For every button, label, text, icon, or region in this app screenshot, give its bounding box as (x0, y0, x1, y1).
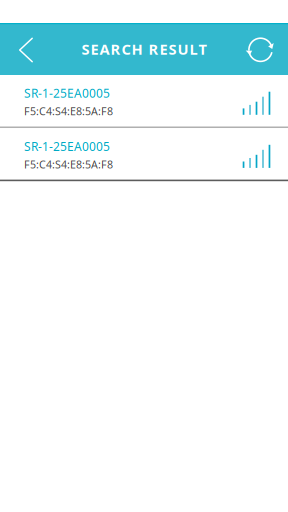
button[interactable]: SR-1-25EA0005 (0, 128, 288, 180)
button[interactable]: Refresh (240, 23, 288, 75)
staticText: S E A R C H R E S U L T (81, 39, 206, 59)
staticText: SR-1-25EA0005 (24, 138, 110, 154)
button[interactable]: Back (0, 23, 48, 75)
staticText: F5:C4:S4:E8:5A:F8 (24, 157, 113, 171)
staticText: F5:C4:S4:E8:5A:F8 (24, 104, 113, 118)
button[interactable]: SR-1-25EA0005 (0, 75, 288, 126)
staticText: SR-1-25EA0005 (24, 85, 110, 101)
